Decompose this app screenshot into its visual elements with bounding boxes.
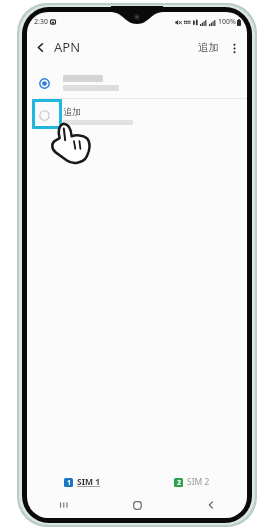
- button[interactable]: 追加: [194, 36, 223, 59]
- button[interactable]: [27, 68, 247, 98]
- button[interactable]: 追加: [27, 99, 247, 131]
- staticText: SIM 2: [187, 476, 210, 488]
- button[interactable]: Recents: [27, 494, 101, 516]
- staticText: 追加: [198, 41, 219, 54]
- staticText: 2: [177, 478, 181, 487]
- button[interactable]: Home: [101, 494, 174, 516]
- staticText: SIM 1: [77, 476, 101, 488]
- button[interactable]: More options: [224, 38, 244, 58]
- staticText: 100%: [218, 17, 236, 27]
- staticText: 2:30: [34, 17, 48, 27]
- button[interactable]: Back: [174, 494, 247, 516]
- button[interactable]: 2: [170, 472, 214, 492]
- staticText: 追加: [63, 106, 81, 117]
- button[interactable]: 1: [60, 472, 105, 492]
- staticText: 1: [67, 478, 71, 487]
- button[interactable]: Back: [27, 34, 53, 60]
- staticText: APN: [54, 38, 81, 56]
